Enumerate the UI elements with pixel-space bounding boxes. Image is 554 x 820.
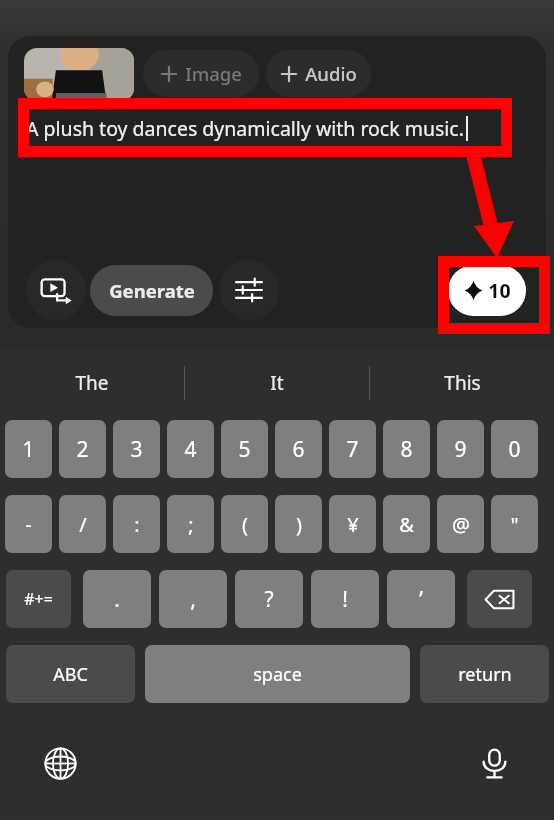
button[interactable]: ) <box>275 495 322 553</box>
staticText: 6 <box>292 435 305 464</box>
staticText: space <box>253 662 302 687</box>
button[interactable]: 5 <box>221 420 268 478</box>
button[interactable]: A plush toy dances dynamically with rock… <box>26 106 526 150</box>
staticText: return <box>458 662 512 687</box>
button[interactable]: ( <box>221 495 268 553</box>
button[interactable]: 10 <box>448 265 526 316</box>
button[interactable]: return <box>420 645 549 703</box>
button[interactable]: space <box>145 645 410 703</box>
staticText: A plush toy dances dynamically with rock… <box>26 115 464 142</box>
staticText: " <box>510 511 519 538</box>
button[interactable]: 7 <box>329 420 376 478</box>
button[interactable]: Image <box>143 50 259 97</box>
button[interactable]: ’ <box>387 570 455 628</box>
staticText: 9 <box>454 435 467 464</box>
staticText: 4 <box>184 435 197 464</box>
button[interactable]: 8 <box>383 420 430 478</box>
button[interactable]: & <box>383 495 430 553</box>
staticText: Image <box>185 61 242 86</box>
staticText: : <box>134 511 140 538</box>
staticText: ; <box>188 511 194 538</box>
staticText: 7 <box>346 435 359 464</box>
button[interactable]: ! <box>311 570 379 628</box>
button[interactable]: 4 <box>167 420 214 478</box>
button[interactable]: ? <box>235 570 303 628</box>
staticText: 10 <box>488 277 511 304</box>
button[interactable]: Change keyboard <box>36 739 84 787</box>
button[interactable]: 0 <box>491 420 538 478</box>
staticText: 0 <box>508 435 521 464</box>
staticText: ¥ <box>347 511 359 538</box>
staticText: 5 <box>238 435 251 464</box>
button[interactable]: Settings <box>219 260 279 320</box>
staticText: 8 <box>400 435 413 464</box>
button[interactable]: @ <box>437 495 484 553</box>
staticText: #+= <box>24 588 53 610</box>
button[interactable]: : <box>113 495 160 553</box>
staticText: / <box>79 511 87 538</box>
button[interactable]: Generate <box>90 265 213 316</box>
button[interactable]: 1 <box>5 420 52 478</box>
staticText: ) <box>296 511 302 538</box>
button[interactable]: ABC <box>6 645 135 703</box>
staticText: It <box>270 370 284 396</box>
button[interactable]: It <box>185 348 369 418</box>
button[interactable]: / <box>59 495 106 553</box>
staticText: 3 <box>130 435 143 464</box>
button[interactable]: . <box>83 570 151 628</box>
button[interactable]: Reference image <box>24 48 134 101</box>
staticText: . <box>114 585 120 614</box>
staticText: , <box>190 585 196 614</box>
staticText: Generate <box>109 278 195 303</box>
staticText: ’ <box>419 585 423 614</box>
button[interactable]: Video mode <box>26 260 86 320</box>
button[interactable]: ¥ <box>329 495 376 553</box>
staticText: 2 <box>76 435 89 464</box>
staticText: & <box>399 511 414 538</box>
button[interactable]: 9 <box>437 420 484 478</box>
button[interactable]: " <box>491 495 538 553</box>
staticText: ABC <box>53 662 88 687</box>
button[interactable]: Backspace <box>467 570 532 628</box>
button[interactable]: - <box>5 495 52 553</box>
button[interactable]: 3 <box>113 420 160 478</box>
button[interactable]: Dictation <box>470 739 518 787</box>
button[interactable]: 2 <box>59 420 106 478</box>
staticText: - <box>25 511 32 538</box>
button[interactable]: 6 <box>275 420 322 478</box>
staticText: ! <box>342 585 348 614</box>
staticText: @ <box>452 511 470 538</box>
button[interactable]: The <box>0 348 184 418</box>
button[interactable]: ; <box>167 495 214 553</box>
button[interactable]: This <box>370 348 554 418</box>
staticText: ? <box>264 585 274 614</box>
button[interactable]: #+= <box>6 570 71 628</box>
button[interactable]: , <box>159 570 227 628</box>
staticText: The <box>75 370 109 396</box>
staticText: This <box>444 370 481 396</box>
button[interactable]: Audio <box>266 50 371 97</box>
staticText: 1 <box>22 435 35 464</box>
staticText: ( <box>242 511 248 538</box>
staticText: Audio <box>305 61 357 86</box>
